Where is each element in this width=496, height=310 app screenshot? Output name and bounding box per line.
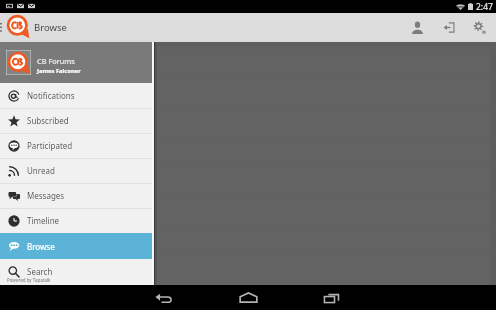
button[interactable]: Search bbox=[0, 259, 153, 284]
button[interactable]: Home bbox=[218, 285, 278, 310]
staticText: James Falconer bbox=[37, 67, 81, 75]
staticText: Timeline bbox=[27, 215, 60, 226]
button[interactable]: Timeline bbox=[0, 208, 153, 233]
button[interactable]: Account bbox=[402, 13, 433, 42]
staticText: Powered by Tapatalk bbox=[7, 277, 51, 283]
staticText: Browse bbox=[27, 241, 55, 252]
button[interactable]: Messages bbox=[0, 183, 153, 208]
button[interactable]: Subscribed bbox=[0, 108, 153, 133]
button[interactable]: Open navigation drawer bbox=[0, 13, 31, 42]
button[interactable]: Notifications bbox=[0, 83, 153, 108]
staticText: Participated bbox=[27, 140, 73, 151]
button[interactable]: Settings bbox=[464, 13, 495, 42]
staticText: 2:47 bbox=[476, 1, 493, 13]
staticText: CB Forums bbox=[37, 56, 75, 66]
staticText: Search bbox=[27, 266, 53, 277]
staticText: Browse bbox=[34, 21, 67, 34]
button[interactable]: Back bbox=[134, 285, 194, 310]
button[interactable]: Browse bbox=[0, 233, 153, 259]
button[interactable]: Unread bbox=[0, 158, 153, 183]
button[interactable]: Recent apps bbox=[302, 285, 362, 310]
button[interactable]: Participated bbox=[0, 133, 153, 158]
button[interactable]: CB Forums bbox=[0, 42, 153, 83]
staticText: Subscribed bbox=[27, 115, 69, 126]
staticText: Unread bbox=[27, 165, 55, 176]
staticText: Notifications bbox=[27, 90, 75, 101]
staticText: Messages bbox=[27, 190, 65, 201]
button[interactable]: Log out bbox=[433, 13, 464, 42]
